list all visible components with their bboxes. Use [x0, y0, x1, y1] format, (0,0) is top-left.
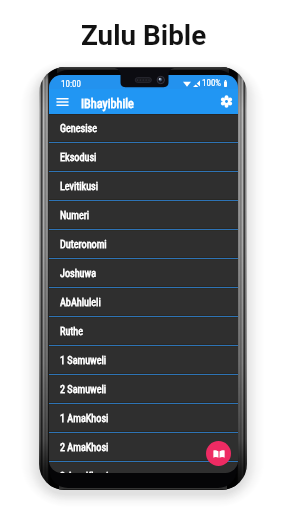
button[interactable]: 3 AmaKhosi — [49, 462, 238, 473]
staticText: 100% — [202, 78, 222, 89]
button[interactable]: 1 AmaKhosi — [49, 404, 238, 432]
staticText: Numeri — [60, 210, 90, 222]
staticText: Joshuwa — [60, 268, 97, 280]
button[interactable]: AbAhluleli — [49, 288, 238, 316]
staticText: 10:00 — [61, 79, 81, 90]
staticText: IBhayibhile — [81, 97, 134, 111]
staticText: Zulu Bible — [81, 19, 207, 52]
button[interactable]: Numeri — [49, 201, 238, 229]
staticText: AbAhluleli — [60, 297, 101, 309]
staticText: 3 AmaKhosi — [60, 471, 109, 473]
button[interactable]: 2 Samuweli — [49, 375, 238, 403]
button[interactable]: Open navigation menu — [54, 93, 71, 110]
staticText: Ruthe — [60, 326, 84, 338]
staticText: Levitikusi — [60, 181, 99, 193]
button[interactable]: Eksodusi — [49, 143, 238, 171]
button[interactable]: Ruthe — [49, 317, 238, 345]
button[interactable]: Joshuwa — [49, 259, 238, 287]
staticText: Duteronomi — [60, 239, 107, 251]
button[interactable]: 2 AmaKhosi — [49, 433, 238, 461]
button[interactable]: Genesise — [49, 114, 238, 142]
button[interactable]: Open the Bible reader — [206, 441, 231, 466]
staticText: 1 Samuweli — [60, 355, 107, 367]
button[interactable]: Duteronomi — [49, 230, 238, 258]
button[interactable]: Settings — [218, 93, 235, 110]
staticText: Eksodusi — [60, 152, 97, 164]
button[interactable]: 1 Samuweli — [49, 346, 238, 374]
button[interactable]: Levitikusi — [49, 172, 238, 200]
staticText: 1 AmaKhosi — [60, 413, 109, 425]
staticText: Genesise — [60, 123, 97, 135]
staticText: 2 AmaKhosi — [60, 442, 109, 454]
staticText: 2 Samuweli — [60, 384, 107, 396]
